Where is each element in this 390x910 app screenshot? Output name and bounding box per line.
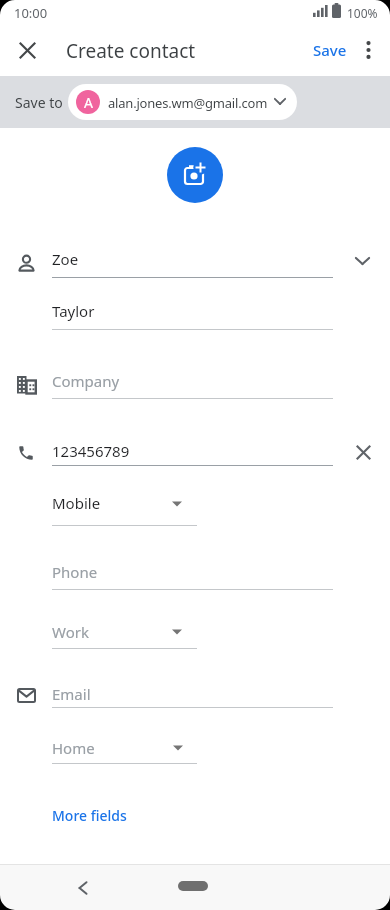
staticText: Save [313, 40, 347, 60]
staticText: Save to [15, 93, 63, 112]
staticText: Phone [52, 562, 98, 582]
button[interactable] [52, 490, 197, 526]
button[interactable] [8, 31, 46, 69]
button[interactable] [52, 616, 197, 649]
button[interactable] [52, 438, 333, 468]
staticText: Mobile [52, 493, 101, 513]
staticText: alan.jones.wm@gmail.com [108, 94, 268, 112]
staticText: 100% [347, 5, 378, 21]
button[interactable] [40, 800, 150, 832]
staticText: A [84, 93, 93, 112]
button[interactable] [52, 732, 197, 765]
staticText: Company [52, 371, 120, 391]
button[interactable] [52, 244, 333, 278]
button[interactable] [349, 31, 387, 69]
staticText: 123456789 [52, 441, 130, 461]
staticText: Taylor [52, 301, 95, 321]
staticText: Work [52, 622, 89, 642]
button[interactable] [52, 558, 333, 590]
button[interactable] [344, 243, 380, 279]
staticText: More fields [52, 806, 127, 825]
button[interactable] [167, 147, 223, 203]
staticText: Zoe [52, 249, 79, 269]
staticText: Create contact [66, 38, 196, 64]
button[interactable] [178, 881, 208, 891]
staticText: 10:00 [14, 4, 48, 22]
button[interactable] [52, 680, 333, 710]
button[interactable]: Save [300, 34, 360, 66]
button[interactable] [63, 868, 103, 908]
button[interactable] [52, 366, 333, 399]
staticText: Home [52, 738, 95, 758]
staticText: Email [52, 684, 91, 704]
button[interactable] [345, 434, 381, 470]
button[interactable] [52, 296, 333, 330]
button[interactable]: A [68, 84, 297, 120]
